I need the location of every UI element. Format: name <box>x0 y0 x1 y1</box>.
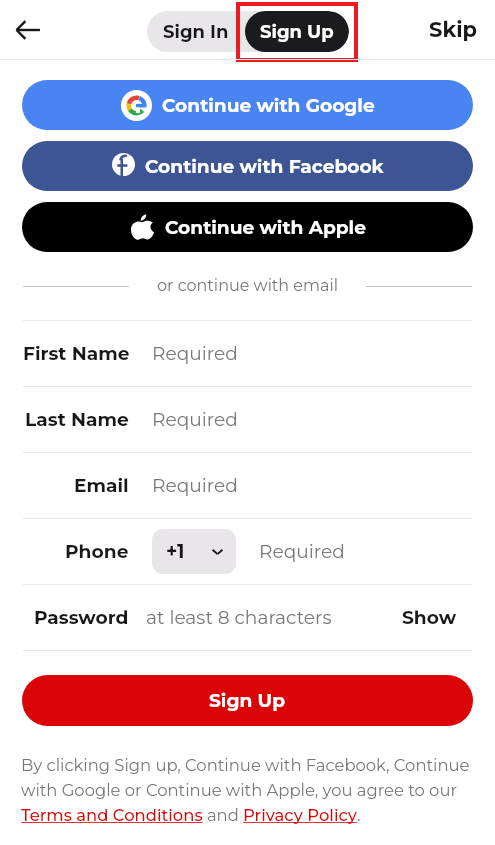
button[interactable]: Sign Up <box>245 11 349 52</box>
button[interactable]: Sign In <box>147 11 245 52</box>
staticText: Continue with Facebook <box>145 155 384 178</box>
staticText: First Name <box>23 342 130 365</box>
button[interactable]: Continue with Facebook <box>22 141 473 191</box>
staticText: Required <box>152 474 238 497</box>
button[interactable]: First Name <box>0 321 495 386</box>
button[interactable]: Show <box>402 606 457 629</box>
button[interactable]: Email <box>0 453 495 518</box>
staticText: Required <box>152 408 238 431</box>
staticText: Required <box>152 342 238 365</box>
button[interactable]: Last Name <box>0 387 495 452</box>
staticText: By clicking Sign up, Continue with Faceb… <box>21 755 481 825</box>
button[interactable]: Continue with Google <box>22 80 473 130</box>
staticText: +1 <box>166 540 185 563</box>
staticText: Password <box>34 606 129 629</box>
button[interactable]: Back <box>6 8 50 52</box>
button[interactable]: Continue with Apple <box>22 202 473 252</box>
staticText: Sign In <box>163 21 229 43</box>
button[interactable]: +1 <box>152 529 236 574</box>
staticText: at least 8 characters <box>146 606 332 629</box>
staticText: Last Name <box>25 408 129 431</box>
staticText: Continue with Apple <box>165 216 366 239</box>
staticText: Continue with Google <box>162 94 375 117</box>
staticText: Sign Up <box>260 21 334 43</box>
staticText: Required <box>259 540 345 563</box>
staticText: Show <box>402 606 457 629</box>
button[interactable]: Skip <box>429 17 477 43</box>
staticText: or continue with email <box>157 276 338 296</box>
button[interactable]: Sign Up <box>22 675 473 726</box>
staticText: Skip <box>429 17 477 43</box>
staticText: Email <box>74 474 129 497</box>
staticText: Sign Up <box>209 689 286 712</box>
staticText: Phone <box>65 540 129 563</box>
